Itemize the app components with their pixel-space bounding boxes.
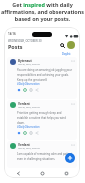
staticText: Verdant — [18, 143, 30, 147]
button[interactable]: #DailyObservation — [17, 125, 40, 129]
button[interactable]: Daylist — [62, 52, 71, 56]
staticText: Nov 30, 2024, 3:02 PM — [18, 147, 40, 150]
staticText: Verdant — [18, 102, 30, 106]
staticText: Bytenaut — [18, 59, 32, 63]
staticText: Get inspired with daily affirmations, an… — [0, 1, 85, 22]
button[interactable]: Verdant — [7, 141, 77, 168]
button[interactable]: Bytenaut — [7, 57, 77, 99]
staticText: I am capable of remaining calm and patie… — [17, 152, 72, 160]
button[interactable]: New post — [65, 153, 75, 163]
staticText: You are doing an amazing job juggling yo… — [17, 68, 72, 81]
button[interactable]: Home — [38, 169, 46, 177]
staticText: 14:16 — [8, 32, 16, 36]
button[interactable]: Search — [59, 42, 65, 48]
button[interactable]: Share — [35, 88, 39, 92]
button[interactable]: #DailyObservation — [17, 82, 40, 86]
staticText: Prioritize getting enough sleep and esta… — [17, 111, 72, 124]
staticText: Nov 30, 2024, 3:02 PM — [18, 106, 40, 109]
button[interactable]: Save — [29, 88, 33, 92]
button[interactable]: Recents — [62, 169, 70, 177]
staticText: Posts — [8, 43, 23, 50]
button[interactable]: Like — [17, 131, 21, 135]
button[interactable]: Save — [29, 131, 33, 135]
button[interactable]: More options — [71, 59, 75, 63]
staticText: Nov 30, 2024, 3:02 PM — [18, 63, 40, 66]
button[interactable]: Profile — [67, 41, 75, 49]
button[interactable]: More options — [71, 102, 75, 106]
button[interactable]: Like — [17, 88, 21, 92]
button[interactable]: Back — [14, 169, 22, 177]
button[interactable]: Celebrate — [23, 131, 27, 135]
button[interactable]: More options — [71, 143, 75, 147]
button[interactable]: Share — [35, 131, 39, 135]
button[interactable]: Celebrate — [23, 88, 27, 92]
button[interactable]: Verdant — [7, 100, 77, 140]
staticText: WEDNESDAY, OCTOBER 30 — [8, 39, 42, 43]
